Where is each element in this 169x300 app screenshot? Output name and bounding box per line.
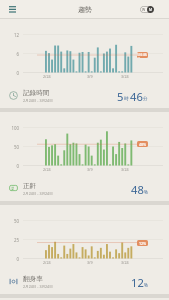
button[interactable]: Menu <box>2 0 22 18</box>
staticText: 3/9 <box>87 74 93 79</box>
staticText: 25 <box>2 237 19 243</box>
staticText: 50 <box>2 144 19 150</box>
staticText: 3/24 <box>121 167 129 172</box>
staticText: 48 <box>131 182 144 197</box>
staticText: 趨勢 <box>78 5 92 14</box>
staticText: 正鼾 <box>23 182 37 190</box>
staticText: 記錄時間 <box>23 89 50 97</box>
button[interactable]: 48% <box>137 141 148 147</box>
button[interactable]: 翻身率 <box>0 269 169 294</box>
staticText: 12 <box>131 275 144 290</box>
staticText: 分 <box>143 96 148 102</box>
staticText: 100 <box>2 125 19 131</box>
staticText: 12 <box>2 32 19 38</box>
staticText: 時 <box>124 96 129 102</box>
staticText: 2月24日 - 3月24日 <box>23 284 53 289</box>
staticText: W <box>142 7 146 12</box>
button[interactable]: 記錄時間 <box>0 83 169 108</box>
staticText: % <box>144 189 148 195</box>
staticText: 0 <box>2 256 19 262</box>
staticText: 2/24 <box>43 260 51 265</box>
staticText: 6 <box>2 51 19 57</box>
staticText: 5時46分 <box>137 52 148 58</box>
staticText: M <box>149 7 153 12</box>
staticText: 12% <box>139 241 147 246</box>
staticText: 0 <box>2 70 19 76</box>
staticText: 0 <box>2 163 19 169</box>
staticText: 翻身率 <box>23 275 43 283</box>
staticText: % <box>144 282 148 288</box>
staticText: 3/9 <box>87 260 93 265</box>
button[interactable]: W <box>140 6 147 13</box>
staticText: 46 <box>130 89 143 104</box>
staticText: 2/24 <box>43 74 51 79</box>
button[interactable]: 正鼾 <box>0 176 169 201</box>
staticText: 50 <box>2 218 19 224</box>
staticText: 3/24 <box>121 74 129 79</box>
staticText: 3/9 <box>87 167 93 172</box>
button[interactable]: 5時46分 <box>137 52 148 58</box>
staticText: 5 <box>117 89 124 104</box>
staticText: 2/24 <box>43 167 51 172</box>
staticText: 48% <box>139 142 147 147</box>
staticText: 2月24日 - 3月24日 <box>23 98 53 103</box>
staticText: 3/24 <box>121 260 129 265</box>
button[interactable]: 12% <box>137 240 148 246</box>
staticText: 2月24日 - 3月24日 <box>23 191 53 196</box>
button[interactable]: M <box>147 6 154 13</box>
